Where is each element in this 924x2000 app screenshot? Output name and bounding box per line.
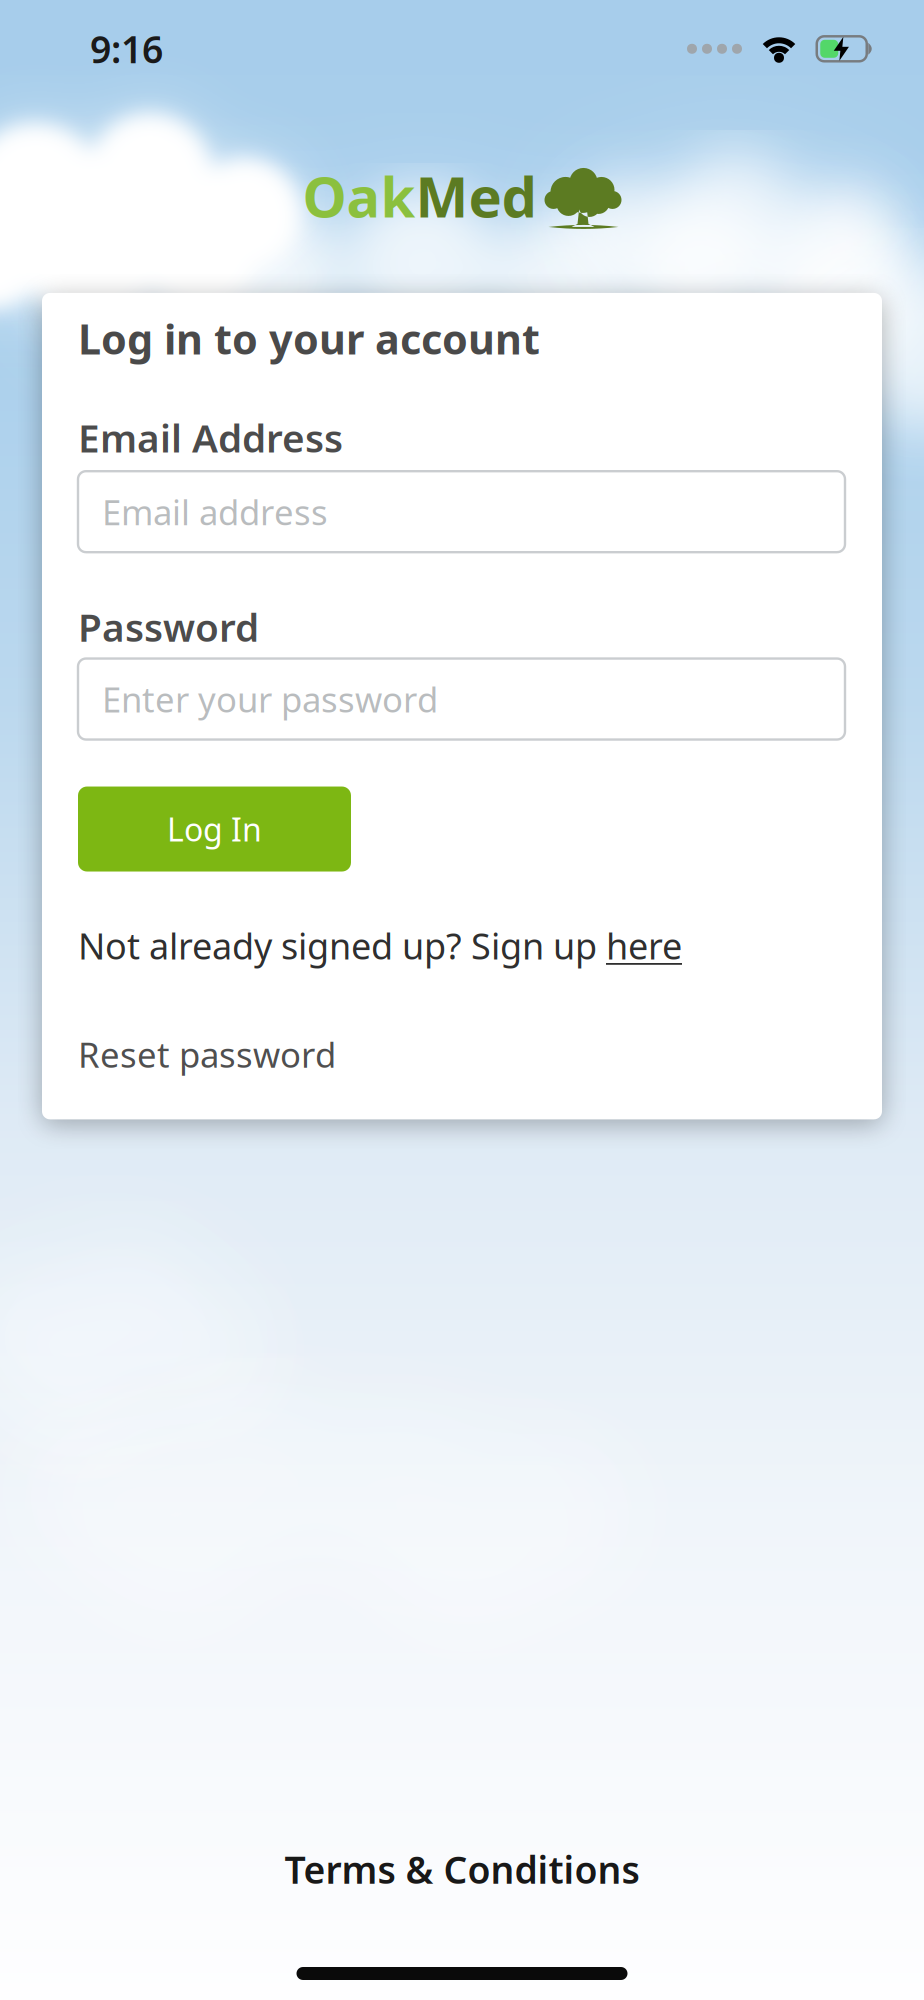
staticText: Log in to your account <box>78 311 540 366</box>
staticText: Oak <box>302 159 415 233</box>
staticText: Password <box>78 601 259 652</box>
staticText: Med <box>415 159 536 233</box>
button[interactable]: Terms & Conditions <box>284 1844 639 1894</box>
button[interactable]: Not already signed up? Sign up here <box>78 921 682 969</box>
staticText: Log In <box>167 808 262 850</box>
button[interactable]: Home <box>296 1967 627 1980</box>
staticText: Reset password <box>78 1031 336 1077</box>
button[interactable]: Email address <box>78 471 845 552</box>
staticText: Email Address <box>78 412 343 463</box>
button[interactable]: Enter your password <box>78 658 845 739</box>
button[interactable]: Log In <box>78 786 351 871</box>
staticText: Email address <box>102 489 328 535</box>
staticText: Terms & Conditions <box>284 1844 639 1894</box>
staticText: 9:16 <box>90 24 163 74</box>
staticText: Enter your password <box>102 676 438 722</box>
button[interactable]: Reset password <box>78 1031 336 1077</box>
staticText: Not already signed up? Sign up here <box>78 921 682 969</box>
